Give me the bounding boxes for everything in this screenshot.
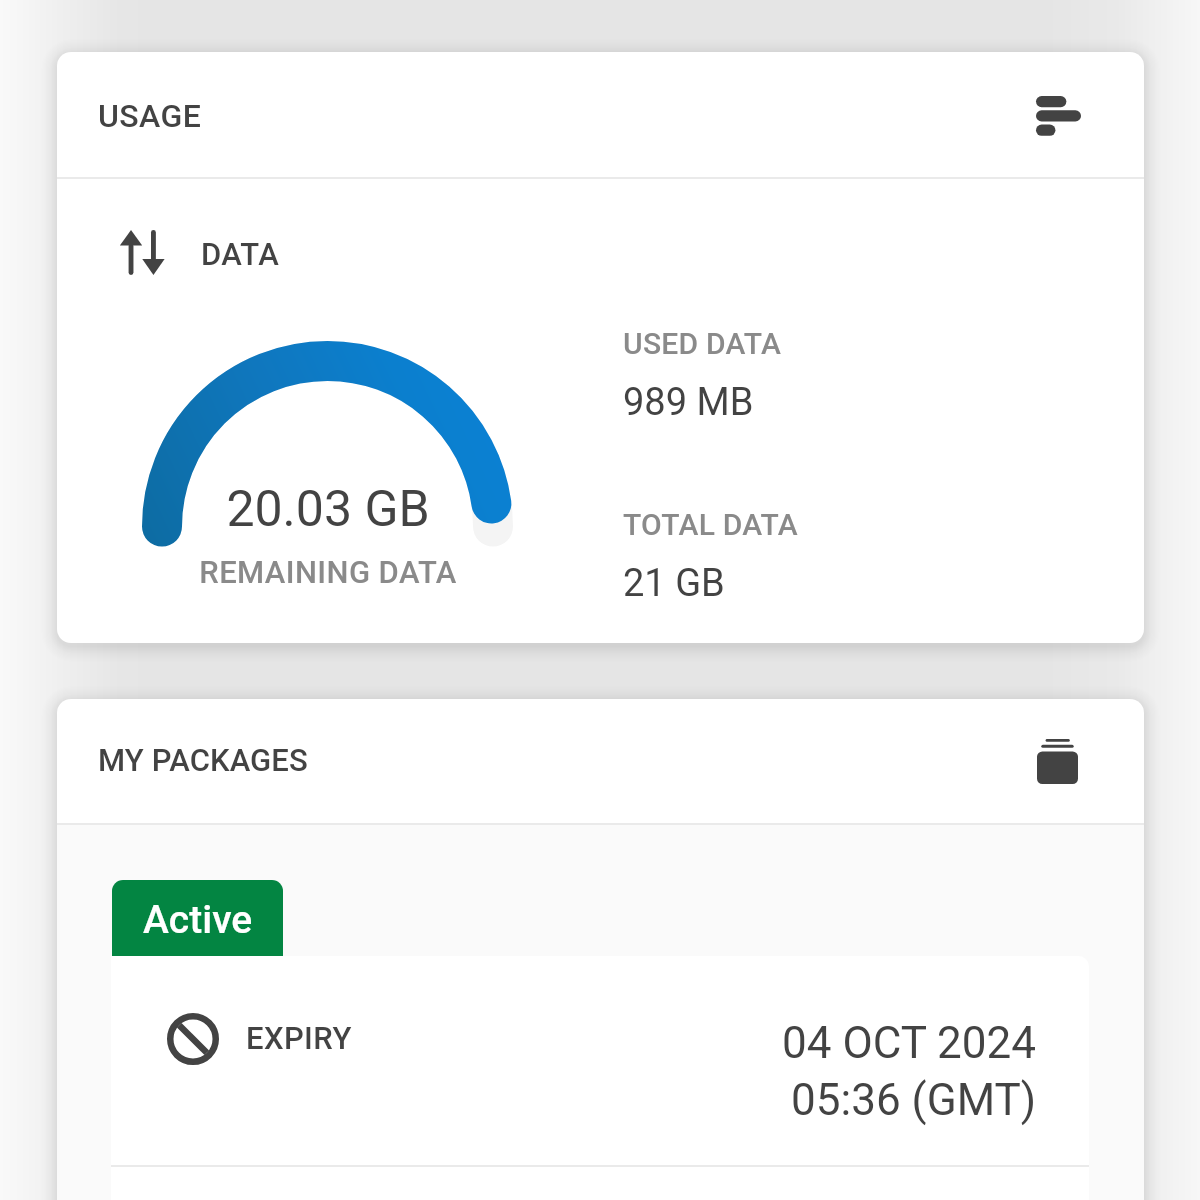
button[interactable]: USAGE bbox=[57, 52, 1144, 177]
staticText: TOTAL DATA bbox=[623, 507, 798, 542]
staticText: MY PACKAGES bbox=[98, 742, 308, 778]
staticText: DATA bbox=[201, 236, 280, 272]
staticText: 989 MB bbox=[623, 380, 754, 425]
staticText: 05:36 (GMT) bbox=[636, 1074, 1036, 1126]
staticText: Active bbox=[143, 897, 253, 943]
staticText: EXPIRY bbox=[246, 1020, 352, 1056]
button[interactable]: All packages bbox=[1026, 730, 1088, 792]
staticText: USED DATA bbox=[623, 326, 782, 361]
button[interactable]: MY PACKAGES bbox=[57, 699, 1144, 823]
button[interactable]: Active bbox=[112, 880, 283, 956]
button[interactable]: Sort usage bbox=[1027, 85, 1089, 147]
staticText: 21 GB bbox=[623, 561, 725, 606]
button[interactable]: EXPIRY bbox=[111, 956, 1089, 1165]
staticText: REMAINING DATA bbox=[128, 554, 528, 590]
staticText: USAGE bbox=[98, 97, 202, 135]
staticText: 04 OCT 2024 bbox=[636, 1017, 1036, 1069]
staticText: 20.03 GB bbox=[128, 480, 528, 539]
